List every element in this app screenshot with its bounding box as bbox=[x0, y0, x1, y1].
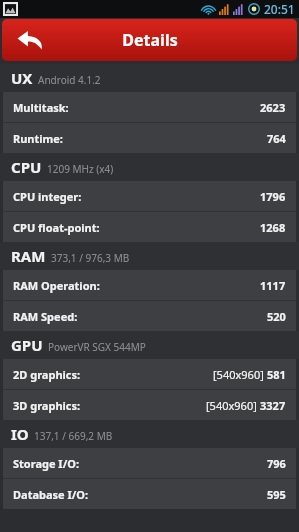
staticText: 137,1 / 669,2 MB bbox=[34, 429, 113, 443]
staticText: 1796 bbox=[260, 189, 286, 204]
button[interactable]: Database I/O: bbox=[3, 479, 296, 509]
staticText: IO bbox=[11, 424, 29, 444]
staticText: 595 bbox=[267, 487, 286, 502]
staticText: [540x960] bbox=[206, 398, 257, 413]
staticText: 3327 bbox=[260, 398, 286, 413]
button[interactable]: 3D graphics: bbox=[3, 390, 296, 420]
button[interactable]: Back bbox=[2, 19, 58, 61]
staticText: Storage I/O: bbox=[13, 456, 80, 471]
staticText: 20:51 bbox=[264, 1, 295, 17]
staticText: 1268 bbox=[260, 220, 286, 235]
staticText: 796 bbox=[267, 456, 286, 471]
button[interactable]: RAM Operation: bbox=[3, 270, 296, 300]
button[interactable]: Multitask: bbox=[3, 92, 296, 122]
staticText: CPU bbox=[11, 157, 42, 177]
button[interactable]: Storage I/O: bbox=[3, 448, 296, 478]
staticText: CPU float-point: bbox=[13, 220, 100, 235]
staticText: UX bbox=[11, 68, 33, 88]
staticText: RAM bbox=[11, 246, 46, 266]
button[interactable]: RAM Speed: bbox=[3, 301, 296, 331]
staticText: Details bbox=[122, 29, 178, 51]
staticText: CPU integer: bbox=[13, 189, 82, 204]
button[interactable]: 2D graphics: bbox=[3, 359, 296, 389]
staticText: RAM Operation: bbox=[13, 278, 100, 293]
staticText: 520 bbox=[267, 309, 286, 324]
staticText: Multitask: bbox=[13, 100, 69, 115]
staticText: Database I/O: bbox=[13, 487, 89, 502]
staticText: 764 bbox=[267, 131, 286, 146]
button[interactable]: CPU float-point: bbox=[3, 212, 296, 242]
staticText: [540x960] bbox=[213, 367, 264, 382]
staticText: 2623 bbox=[260, 100, 286, 115]
button[interactable]: Runtime: bbox=[3, 123, 296, 153]
staticText: 2D graphics: bbox=[13, 367, 81, 382]
staticText: 581 bbox=[267, 367, 286, 382]
staticText: 1117 bbox=[260, 278, 286, 293]
staticText: Android 4.1.2 bbox=[38, 73, 101, 87]
staticText: 373,1 / 976,3 MB bbox=[51, 251, 130, 265]
staticText: PowerVR SGX 544MP bbox=[48, 340, 146, 354]
staticText: Runtime: bbox=[13, 131, 63, 146]
staticText: 3D graphics: bbox=[13, 398, 81, 413]
staticText: GPU bbox=[11, 335, 43, 355]
button[interactable]: CPU integer: bbox=[3, 181, 296, 211]
staticText: RAM Speed: bbox=[13, 309, 78, 324]
staticText: 1209 MHz (x4) bbox=[47, 162, 114, 176]
